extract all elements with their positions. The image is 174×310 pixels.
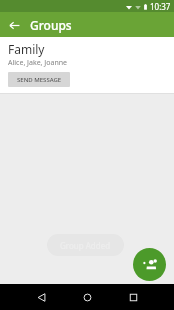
- staticText: Family: [8, 41, 45, 57]
- staticText: 10:37: [150, 1, 171, 12]
- button[interactable]: Add group: [133, 248, 166, 281]
- button[interactable]: Family: [0, 37, 174, 93]
- staticText: Groups: [30, 17, 72, 33]
- button[interactable]: Back: [31, 287, 51, 307]
- button[interactable]: SEND MESSAGE: [8, 72, 70, 87]
- button[interactable]: Recent apps: [123, 287, 143, 307]
- button[interactable]: Home: [77, 287, 97, 307]
- button[interactable]: Back: [5, 16, 23, 34]
- staticText: Alice, Jake, Joanne: [8, 58, 67, 68]
- staticText: SEND MESSAGE: [17, 76, 62, 84]
